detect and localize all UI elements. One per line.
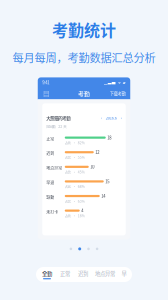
staticText: 未打卡	[46, 209, 58, 215]
staticText: 考勤	[78, 89, 90, 98]
staticText: 占比 · 55%	[65, 155, 85, 160]
staticText: 正常	[60, 270, 70, 277]
staticText: 占比 · 18%	[65, 213, 85, 218]
staticText: 迟到	[78, 270, 88, 277]
staticText: 应出勤 22 天	[46, 124, 66, 129]
staticText: 占比 · 63%	[65, 199, 85, 204]
staticText: 占比 · 45%	[65, 170, 85, 174]
staticText: 早	[121, 270, 126, 277]
staticText: 迟到	[46, 151, 54, 156]
button[interactable]: 全勤	[38, 267, 56, 282]
staticText: ‹ 2016.6 ›	[101, 115, 122, 121]
staticText: 地点异常	[46, 165, 62, 171]
button[interactable]: 迟到	[74, 267, 92, 282]
staticText: 全勤	[42, 270, 52, 277]
button[interactable]: Menu	[42, 89, 50, 97]
staticText: 10	[90, 164, 94, 170]
staticText: 考勤统计	[52, 18, 116, 41]
staticText: 早退	[46, 180, 54, 186]
staticText: 4	[81, 208, 83, 214]
staticText: 地点异常	[95, 270, 115, 277]
staticText: 大熊猫的考勤	[46, 115, 70, 121]
button[interactable]: 下载考勤	[110, 90, 126, 96]
button[interactable]: 早	[118, 267, 130, 282]
button[interactable]: 正常	[56, 267, 74, 282]
staticText: 9:41	[42, 79, 49, 85]
staticText: 缺勤	[46, 194, 54, 200]
staticText: 14	[101, 193, 105, 199]
staticText: 18	[107, 135, 111, 141]
button[interactable]: ‹ 2016.6 ›	[101, 115, 122, 121]
button[interactable]: 地点异常	[92, 267, 118, 282]
staticText: ▤	[43, 89, 49, 98]
staticText: 占比 · 82%	[65, 140, 85, 145]
staticText: 下载考勤	[110, 90, 126, 96]
staticText: 每月每周，考勤数据汇总分析	[12, 49, 155, 65]
staticText: 占比 · 68%	[65, 184, 85, 189]
staticText: ▁▃▅ ᯤ ▰	[104, 80, 126, 85]
staticText: 15	[105, 178, 109, 184]
staticText: 12	[95, 149, 99, 155]
staticText: 正常	[46, 136, 54, 142]
